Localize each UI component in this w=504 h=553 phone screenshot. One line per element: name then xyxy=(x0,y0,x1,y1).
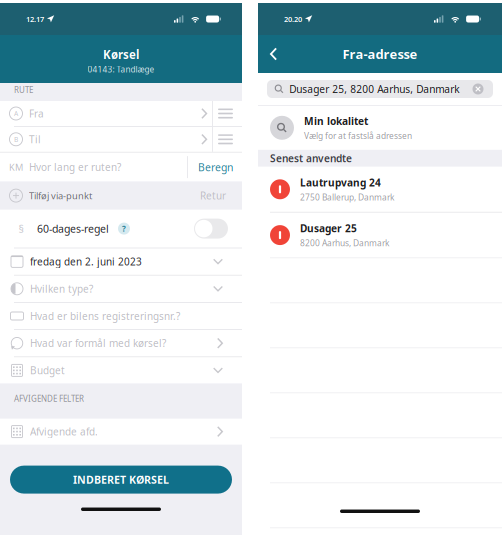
button[interactable]: Tilføj via-punkt xyxy=(0,182,242,210)
staticText: Tilføj via-punkt xyxy=(29,189,92,202)
staticText: INDBERET KØRSEL xyxy=(73,472,169,487)
button[interactable]: Afvigende afd. xyxy=(0,419,242,445)
staticText: Hvilken type? xyxy=(30,282,93,296)
staticText: 60-dages-regel xyxy=(37,221,109,236)
staticText: KM xyxy=(9,161,23,173)
staticText: Kørsel xyxy=(103,47,139,62)
staticText: B xyxy=(14,135,18,144)
staticText: ? xyxy=(122,223,126,234)
staticText: Hvad var formål med kørsel? xyxy=(30,336,166,350)
staticText: Dusager 25, 8200 Aarhus, Danmark xyxy=(289,82,459,96)
button[interactable]: Lautrupvang 24 xyxy=(258,167,502,212)
staticText: Hvor lang er ruten? xyxy=(29,160,121,174)
button[interactable]: INDBERET KØRSEL xyxy=(10,466,232,494)
staticText: 20.20 xyxy=(284,14,302,24)
button[interactable]: Clear xyxy=(471,82,485,96)
button[interactable]: Dusager 25 xyxy=(258,213,502,258)
staticText: Hvad er bilens registreringsnr.? xyxy=(30,309,180,323)
button[interactable]: Hvad var formål med kørsel? xyxy=(0,330,242,356)
button[interactable]: Hvilken type? xyxy=(0,276,242,302)
staticText: Dusager 25 xyxy=(300,221,357,235)
button[interactable]: Hvad er bilens registreringsnr.? xyxy=(0,303,242,329)
staticText: Retur xyxy=(200,189,226,202)
staticText: AFVIGENDE FELTER xyxy=(14,393,84,404)
staticText: A xyxy=(14,109,18,118)
staticText: 04143: Tandlæge xyxy=(87,64,154,75)
button[interactable]: Back xyxy=(270,37,304,71)
button[interactable]: A xyxy=(0,101,242,126)
staticText: Beregn xyxy=(198,160,233,174)
button[interactable]: fredag den 2. juni 2023 xyxy=(0,248,242,275)
staticText: Budget xyxy=(30,364,65,377)
button[interactable]: B xyxy=(0,127,242,152)
staticText: Vælg for at fastslå adressen xyxy=(304,130,412,141)
staticText: Til xyxy=(29,132,41,146)
staticText: RUTE xyxy=(14,85,33,95)
button[interactable]: Min lokalitet xyxy=(258,106,502,150)
button[interactable]: Beregn xyxy=(198,153,233,182)
staticText: 12.17 xyxy=(26,14,44,24)
staticText: Fra xyxy=(29,107,44,120)
staticText: § xyxy=(18,221,23,236)
staticText: Senest anvendte xyxy=(270,151,352,165)
staticText: Min lokalitet xyxy=(304,114,368,128)
staticText: Afvigende afd. xyxy=(30,425,98,438)
staticText: fredag den 2. juni 2023 xyxy=(30,255,142,268)
staticText: Fra-adresse xyxy=(342,45,417,63)
staticText: Lautrupvang 24 xyxy=(300,176,381,189)
staticText: 8200 Aarhus, Danmark xyxy=(300,237,389,249)
button[interactable]: Budget xyxy=(0,357,242,384)
staticText: 2750 Ballerup, Danmark xyxy=(300,191,394,203)
